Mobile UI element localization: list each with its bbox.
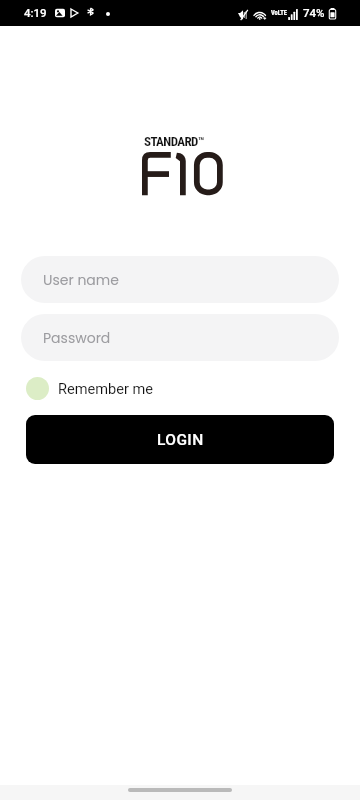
staticText: STANDARD [144,134,198,149]
staticText: VoLTE [271,9,288,17]
staticText: User name [43,270,119,290]
staticText: 74% [303,6,325,19]
button[interactable]: Password [21,314,339,361]
staticText: ™ [198,135,205,148]
button[interactable]: LOGIN [26,415,334,464]
button[interactable]: User name [21,256,339,303]
staticText: Password [43,328,111,348]
staticText: Remember me [58,380,154,397]
button[interactable]: Remember me [26,377,166,400]
staticText: 4:19 [24,6,47,19]
staticText: LOGIN [157,431,204,449]
